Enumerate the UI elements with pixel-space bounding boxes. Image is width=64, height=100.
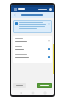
button[interactable]: Home bbox=[30, 90, 35, 95]
button[interactable]: Menu bbox=[13, 7, 17, 11]
button[interactable]: Back bbox=[13, 13, 17, 17]
button[interactable] bbox=[15, 40, 50, 42]
button[interactable]: Recents bbox=[42, 90, 47, 95]
button[interactable] bbox=[13, 83, 26, 88]
button[interactable]: Pick bbox=[48, 56, 50, 58]
other: Information bbox=[15, 22, 18, 25]
button[interactable]: Information bbox=[13, 20, 52, 33]
button[interactable]: Dismiss bbox=[47, 22, 50, 25]
button[interactable]: Account bbox=[49, 8, 52, 11]
button[interactable]: Back bbox=[18, 90, 23, 95]
button[interactable]: Pick bbox=[48, 48, 50, 50]
button[interactable]: Pick bbox=[15, 56, 50, 58]
button[interactable]: Pick bbox=[15, 48, 50, 50]
button[interactable] bbox=[37, 83, 52, 88]
